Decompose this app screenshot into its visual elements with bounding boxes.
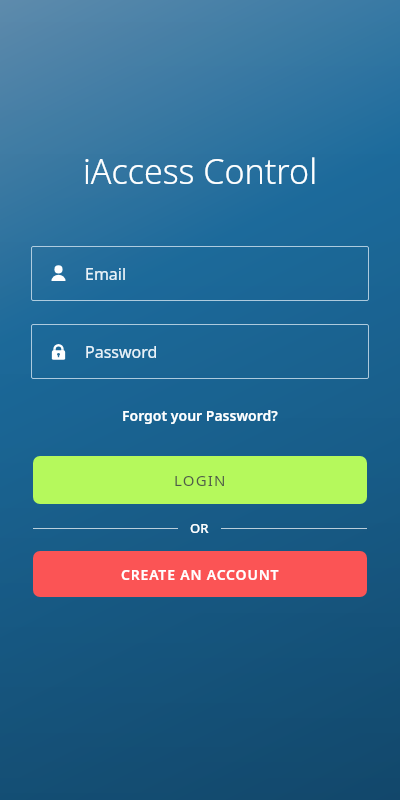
- button[interactable]: Email: [31, 246, 369, 301]
- button[interactable]: Password: [31, 324, 369, 379]
- staticText: CREATE AN ACCOUNT: [121, 565, 280, 584]
- staticText: LOGIN: [174, 470, 227, 490]
- staticText: Forgot your Password?: [122, 406, 278, 425]
- staticText: iAccess Control: [24, 148, 376, 194]
- button[interactable]: LOGIN: [33, 456, 367, 504]
- button[interactable]: CREATE AN ACCOUNT: [33, 551, 367, 597]
- staticText: OR: [190, 519, 209, 537]
- staticText: Email: [85, 263, 127, 285]
- button[interactable]: Forgot your Password?: [0, 400, 400, 431]
- staticText: Password: [85, 341, 158, 363]
